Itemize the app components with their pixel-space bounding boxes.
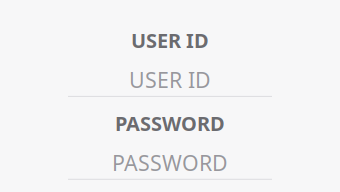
staticText: USER ID — [131, 27, 209, 54]
staticText: PASSWORD — [115, 110, 225, 136]
staticText: PASSWORD — [112, 148, 228, 177]
button[interactable]: USER ID — [68, 66, 272, 97]
button[interactable]: PASSWORD — [68, 148, 272, 180]
staticText: USER ID — [129, 66, 211, 94]
